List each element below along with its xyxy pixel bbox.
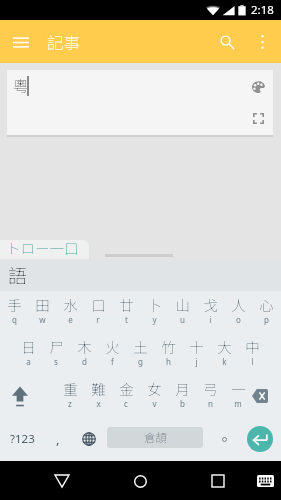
button[interactable]: 難 xyxy=(84,375,112,417)
button[interactable]: Recent apps xyxy=(200,463,236,499)
button[interactable]: 田 xyxy=(28,291,56,333)
staticText: 竹 xyxy=(161,336,176,357)
staticText: 水 xyxy=(63,294,78,315)
button[interactable]: Home xyxy=(122,463,158,499)
staticText: u xyxy=(180,314,185,325)
staticText: 2:18 xyxy=(251,2,274,18)
staticText: 中 xyxy=(245,336,260,357)
button[interactable]: ?123 xyxy=(0,417,45,461)
staticText: 山 xyxy=(175,294,190,315)
staticText: 火 xyxy=(105,336,120,357)
staticText: a xyxy=(26,356,31,367)
button[interactable]: 口 xyxy=(84,291,112,333)
staticText: k xyxy=(222,356,227,367)
staticText: 語 xyxy=(8,261,28,289)
staticText: j xyxy=(195,356,198,367)
button[interactable]: トロー一口 xyxy=(0,240,89,259)
staticText: x xyxy=(96,398,101,409)
button[interactable]: 日 xyxy=(14,333,42,375)
staticText: 土 xyxy=(133,336,148,357)
button[interactable]: Enter xyxy=(247,426,273,452)
staticText: 木 xyxy=(77,336,92,357)
button[interactable]: More options xyxy=(245,25,279,59)
staticText: s xyxy=(54,356,58,367)
button[interactable]: 廿 xyxy=(112,291,140,333)
button[interactable]: Change keyboard xyxy=(71,417,107,461)
staticText: 田 xyxy=(35,294,50,315)
staticText: 粵 xyxy=(13,74,29,96)
staticText: p xyxy=(264,314,269,325)
staticText: 日 xyxy=(21,336,36,357)
staticText: v xyxy=(152,398,157,409)
staticText: c xyxy=(124,398,128,409)
button[interactable]: 弓 xyxy=(196,375,224,417)
staticText: 十 xyxy=(189,336,204,357)
staticText: w xyxy=(39,314,46,325)
staticText: 弓 xyxy=(203,378,218,399)
button[interactable]: 倉頡 xyxy=(107,427,203,448)
button[interactable]: 尸 xyxy=(42,333,70,375)
staticText: h xyxy=(166,356,171,367)
staticText: y xyxy=(152,314,157,325)
button[interactable]: 女 xyxy=(140,375,168,417)
staticText: b xyxy=(180,398,185,409)
staticText: z xyxy=(68,398,72,409)
staticText: 廿 xyxy=(119,294,134,315)
staticText: 月 xyxy=(175,378,190,399)
staticText: 重 xyxy=(63,378,78,399)
button[interactable]: 中 xyxy=(238,333,266,375)
button[interactable]: Comma xyxy=(45,417,71,461)
button[interactable]: 竹 xyxy=(154,333,182,375)
button[interactable]: 重 xyxy=(56,375,84,417)
button[interactable]: 水 xyxy=(56,291,84,333)
button[interactable]: 戈 xyxy=(196,291,224,333)
staticText: 尸 xyxy=(49,336,64,357)
staticText: 倉頡 xyxy=(144,429,167,446)
staticText: 口 xyxy=(91,294,106,315)
staticText: 心 xyxy=(259,294,274,315)
staticText: 戈 xyxy=(203,294,218,315)
staticText: m xyxy=(234,398,242,409)
staticText: トロー一口 xyxy=(6,240,79,256)
button[interactable]: 土 xyxy=(126,333,154,375)
button[interactable]: Fullscreen xyxy=(247,107,269,129)
staticText: i xyxy=(209,314,212,325)
button[interactable]: 山 xyxy=(168,291,196,333)
staticText: ?123 xyxy=(10,431,35,447)
button[interactable]: 一 xyxy=(224,375,252,417)
staticText: 卜 xyxy=(147,294,162,315)
button[interactable]: 卜 xyxy=(140,291,168,333)
button[interactable]: 月 xyxy=(168,375,196,417)
staticText: l xyxy=(251,356,254,367)
staticText: n xyxy=(208,398,213,409)
button[interactable]: 人 xyxy=(224,291,252,333)
button[interactable]: Switch keyboard xyxy=(251,467,279,495)
staticText: 一 xyxy=(231,378,246,399)
staticText: 人 xyxy=(231,294,246,315)
button[interactable]: 木 xyxy=(70,333,98,375)
staticText: q xyxy=(12,314,17,325)
button[interactable]: Shift xyxy=(0,375,56,417)
staticText: d xyxy=(82,356,87,367)
button[interactable]: 火 xyxy=(98,333,126,375)
staticText: t xyxy=(125,314,128,325)
button[interactable]: 手 xyxy=(0,291,28,333)
staticText: f xyxy=(111,356,114,367)
button[interactable]: 粵 xyxy=(7,70,273,135)
button[interactable]: Open navigation drawer xyxy=(4,25,38,59)
button[interactable]: Search xyxy=(209,24,245,60)
staticText: , xyxy=(56,430,60,448)
button[interactable]: 大 xyxy=(210,333,238,375)
button[interactable]: Delete xyxy=(252,375,281,417)
button[interactable]: 十 xyxy=(182,333,210,375)
staticText: 金 xyxy=(119,378,134,399)
staticText: 大 xyxy=(217,336,232,357)
staticText: r xyxy=(96,314,100,325)
button[interactable]: 金 xyxy=(112,375,140,417)
staticText: 手 xyxy=(7,294,22,315)
button[interactable]: Change text colour xyxy=(247,76,269,98)
button[interactable]: Period xyxy=(203,417,245,461)
button[interactable]: 語 xyxy=(0,259,36,291)
button[interactable]: Back xyxy=(44,463,80,499)
button[interactable]: 心 xyxy=(252,291,280,333)
